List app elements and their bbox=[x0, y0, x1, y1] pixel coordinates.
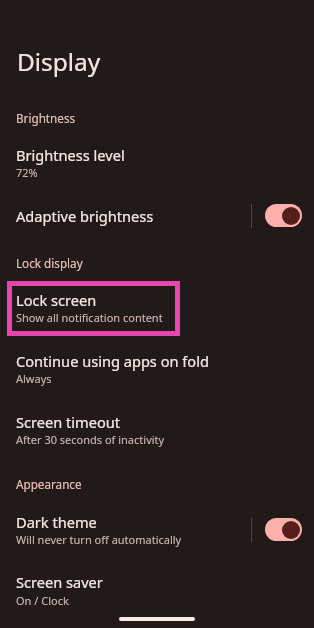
button[interactable]: Lock screen bbox=[0, 281, 314, 336]
staticText: Always bbox=[16, 371, 52, 386]
button[interactable]: Dark theme, on bbox=[265, 518, 302, 541]
staticText: On / Clock bbox=[16, 593, 69, 608]
staticText: Adaptive brightness bbox=[16, 206, 154, 226]
staticText: Lock display bbox=[16, 255, 83, 271]
staticText: Dark theme bbox=[16, 512, 97, 532]
button[interactable]: Adaptive brightness, on bbox=[265, 204, 302, 227]
staticText: Brightness level bbox=[16, 145, 125, 165]
staticText: Display bbox=[17, 45, 101, 78]
staticText: Lock screen bbox=[16, 290, 97, 310]
staticText: Show all notification content bbox=[16, 310, 163, 325]
staticText: Brightness bbox=[16, 110, 76, 126]
button[interactable]: Adaptive brightness bbox=[0, 193, 314, 237]
staticText: Continue using apps on fold bbox=[16, 351, 209, 371]
staticText: After 30 seconds of inactivity bbox=[16, 432, 165, 447]
staticText: Will never turn off automatically bbox=[16, 532, 182, 547]
button[interactable]: Dark theme bbox=[0, 503, 314, 557]
button[interactable]: Brightness level bbox=[0, 136, 314, 190]
button[interactable]: Continue using apps on fold bbox=[0, 342, 314, 396]
staticText: Screen timeout bbox=[16, 412, 121, 432]
staticText: Appearance bbox=[16, 476, 82, 492]
staticText: 72% bbox=[16, 165, 38, 180]
button[interactable]: Screen timeout bbox=[0, 403, 314, 457]
staticText: Screen saver bbox=[16, 572, 103, 592]
button[interactable]: Screen saver bbox=[0, 563, 314, 617]
